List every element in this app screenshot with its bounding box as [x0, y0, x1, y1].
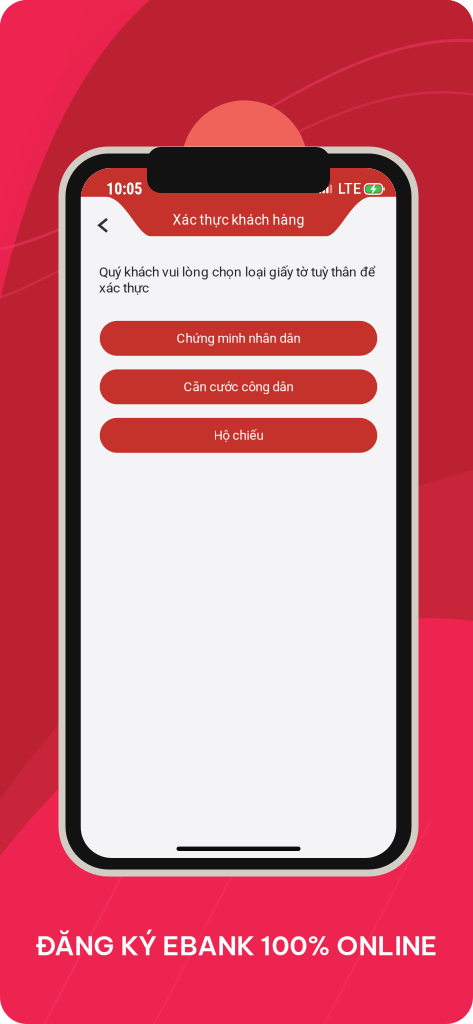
staticText: ĐĂNG KÝ EBANK 100% ONLINE	[35, 929, 437, 962]
button[interactable]: Căn cước công dân	[100, 369, 377, 404]
staticText: LTE	[338, 181, 361, 197]
button[interactable]: Chứng minh nhân dân	[100, 321, 377, 356]
staticText: 10:05	[106, 180, 142, 198]
staticText: Căn cước công dân	[183, 379, 293, 394]
button[interactable]: Hộ chiếu	[100, 418, 377, 453]
staticText: Chứng minh nhân dân	[176, 331, 300, 346]
button[interactable]: Back	[88, 211, 118, 239]
staticText: Quý khách vui lòng chọn loại giấy tờ tuỳ…	[99, 264, 375, 296]
staticText: Xác thực khách hàng	[172, 212, 304, 228]
staticText: Hộ chiếu	[213, 428, 263, 443]
